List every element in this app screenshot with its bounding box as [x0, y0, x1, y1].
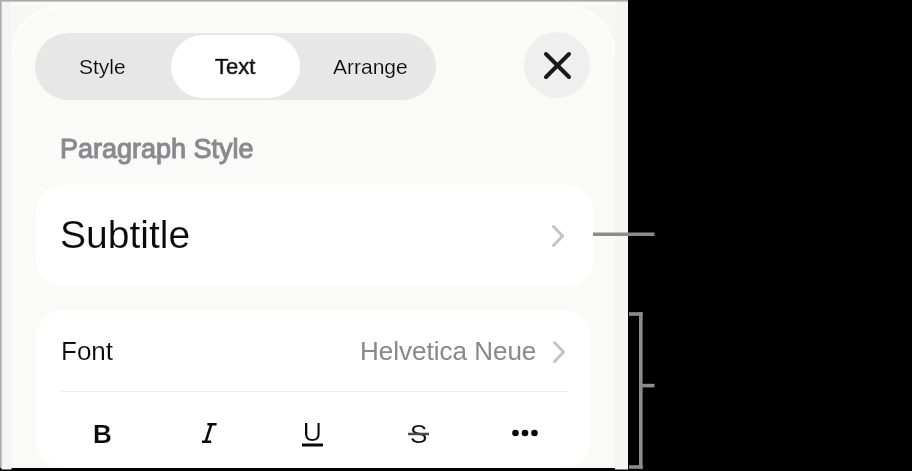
- button[interactable]: Strikethrough: [370, 397, 466, 467]
- staticText: Arrange: [333, 55, 408, 78]
- staticText: Text: [215, 54, 256, 79]
- button[interactable]: Close: [524, 32, 590, 98]
- button[interactable]: Arrange: [310, 33, 430, 100]
- button[interactable]: Underline: [264, 397, 360, 467]
- staticText: Text: [215, 54, 256, 79]
- button[interactable]: More: [477, 397, 573, 467]
- staticText: U: [303, 417, 322, 446]
- button[interactable]: Subtitle: [36, 185, 594, 286]
- button[interactable]: Style: [42, 33, 162, 100]
- staticText: Font: [61, 336, 114, 365]
- button[interactable]: Bold: [54, 397, 150, 467]
- staticText: B: [93, 419, 112, 448]
- staticText: Paragraph Style: [60, 134, 254, 164]
- button[interactable]: Italic: [159, 397, 255, 467]
- staticText: Paragraph Style: [60, 134, 254, 164]
- staticText: Style: [79, 55, 126, 78]
- staticText: Helvetica Neue: [360, 336, 537, 365]
- button[interactable]: Font: [36, 310, 591, 391]
- staticText: S: [410, 419, 428, 448]
- staticText: Subtitle: [60, 213, 191, 257]
- button[interactable]: Text: [171, 35, 300, 98]
